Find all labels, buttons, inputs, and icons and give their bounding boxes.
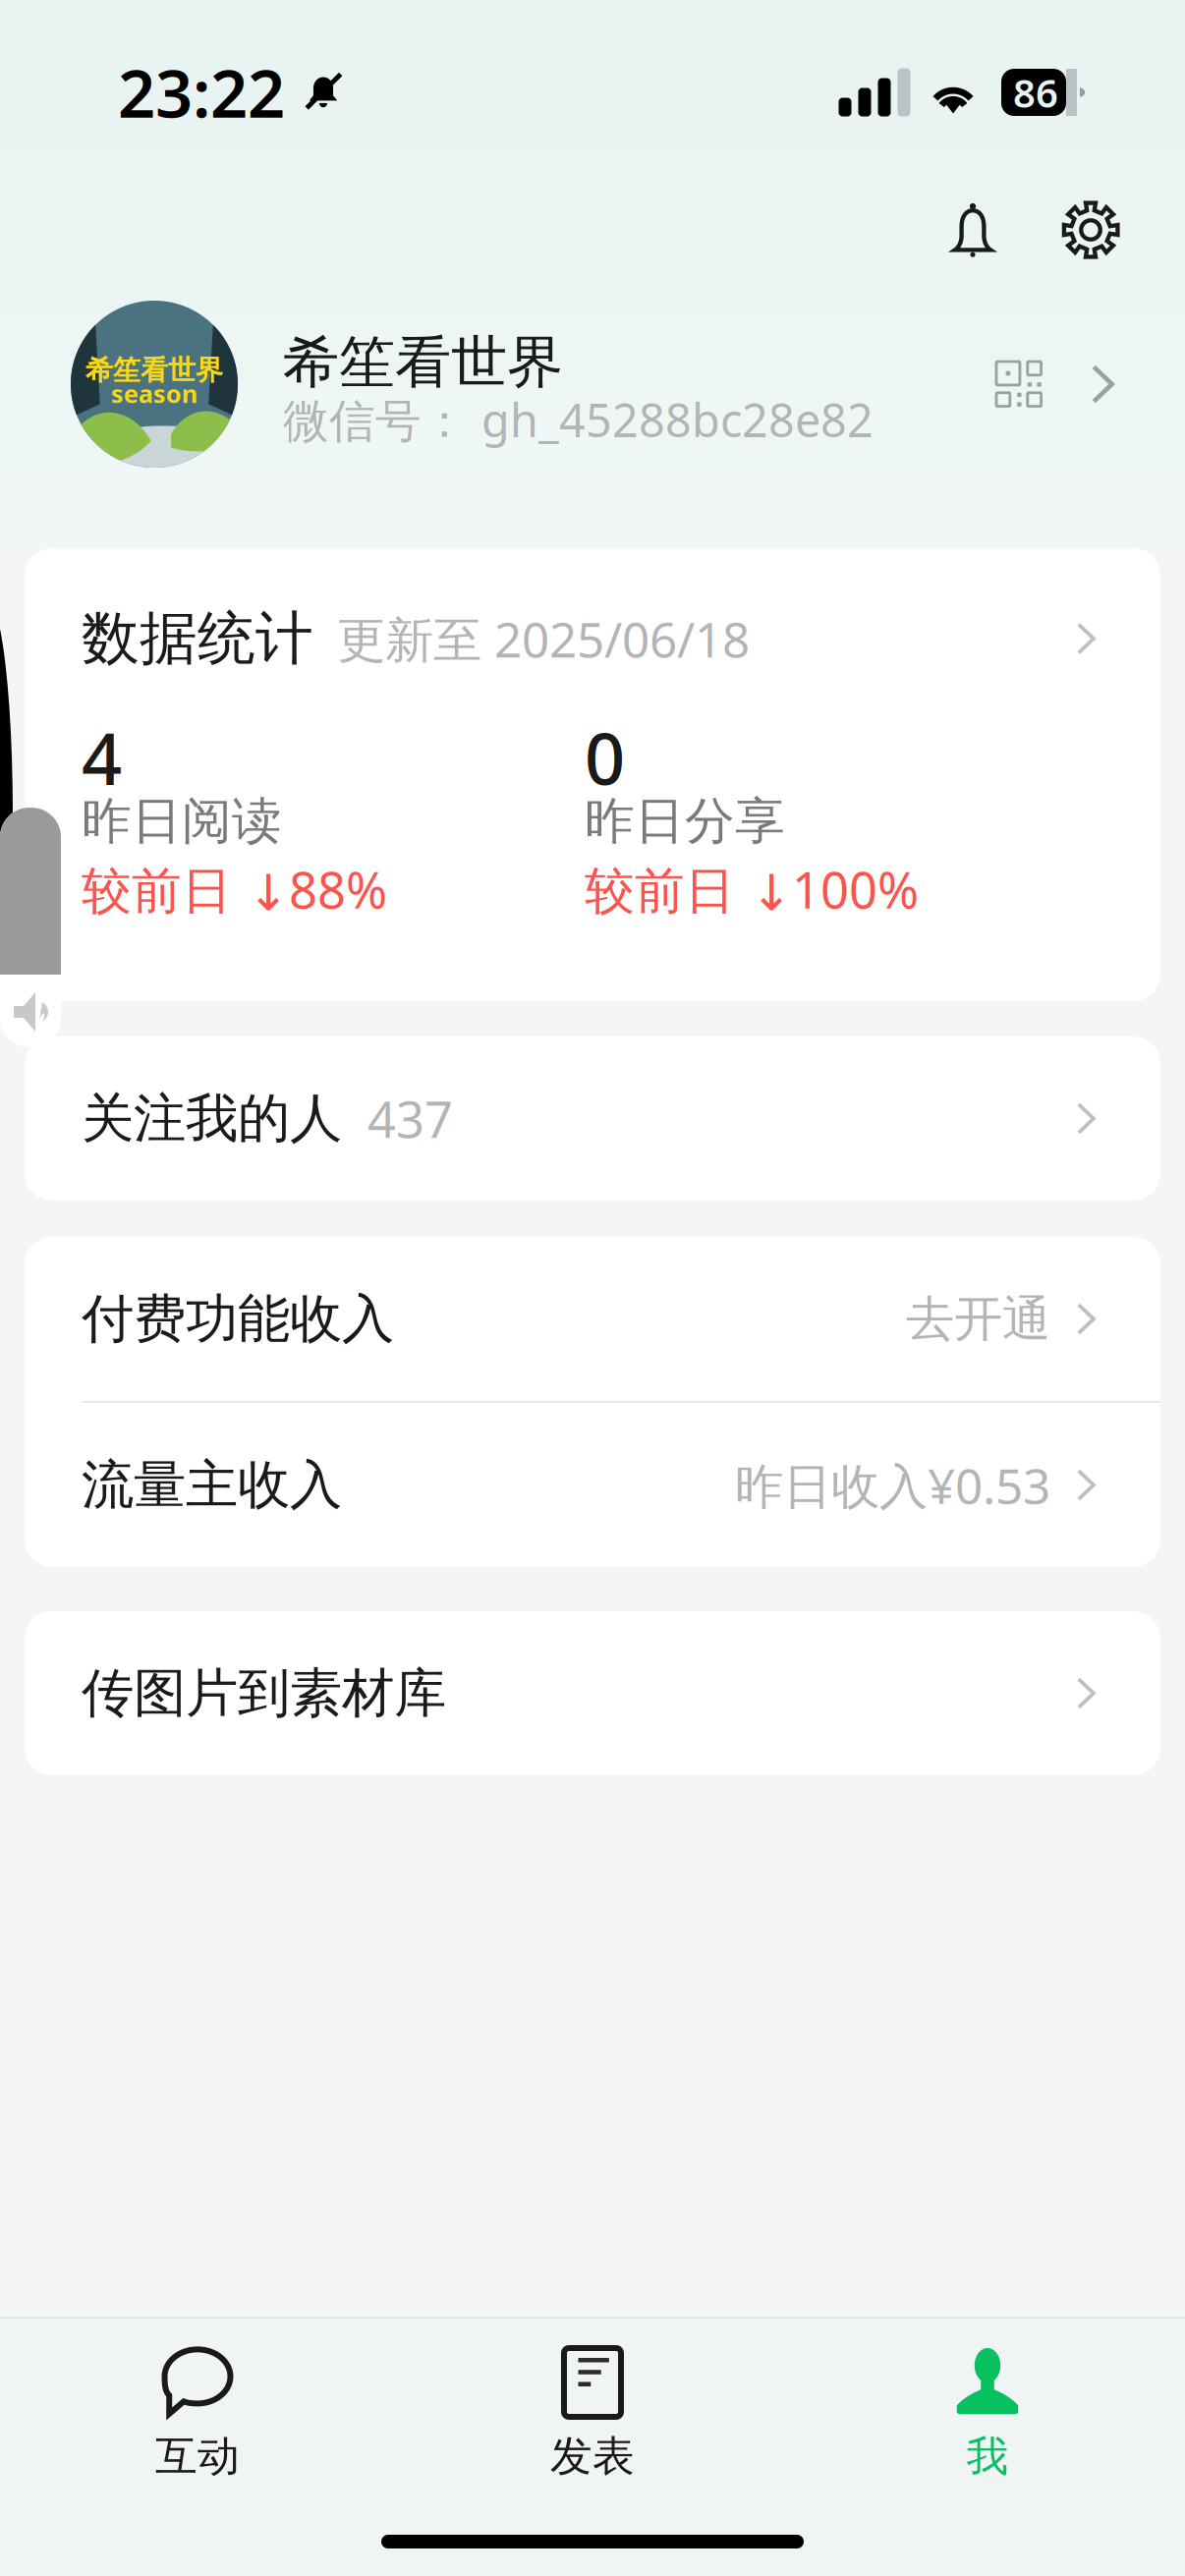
button[interactable]: Settings (1047, 187, 1134, 273)
button[interactable]: 互动 (0, 2348, 395, 2482)
button[interactable]: 传图片到素材库 (25, 1611, 1160, 1775)
staticText: 86 (1013, 66, 1058, 118)
staticText: 较前日 ↓88% (82, 856, 387, 922)
staticText: 希笙看世界 (85, 353, 223, 387)
button[interactable]: 发表 (395, 2348, 790, 2482)
staticText: 我 (966, 2431, 1009, 2482)
staticText: 23:22 (118, 49, 285, 136)
staticText: 数据统计 (82, 603, 313, 674)
staticText: 较前日 ↓100% (585, 856, 919, 922)
staticText: 437 (342, 1086, 453, 1152)
button[interactable]: 关注我的人 (25, 1036, 1160, 1201)
staticText: 付费功能收入 (82, 1287, 394, 1351)
button[interactable]: Notifications (922, 187, 1024, 273)
staticText: 微信号： gh_45288bc28e82 (283, 389, 874, 450)
staticText: 传图片到素材库 (82, 1661, 446, 1725)
staticText: 发表 (550, 2431, 635, 2482)
staticText: 更新至 2025/06/18 (337, 606, 750, 671)
staticText: 昨日收入¥0.53 (735, 1453, 1050, 1517)
staticText: 去开通 (906, 1289, 1050, 1349)
staticText: 关注我的人 (82, 1086, 342, 1151)
staticText: 希笙看世界 (283, 328, 563, 397)
staticText: 0 (585, 711, 625, 804)
button[interactable]: 流量主收入 (25, 1403, 1160, 1567)
button[interactable]: 付费功能收入 (25, 1237, 1160, 1401)
staticText: season (111, 377, 197, 410)
staticText: 互动 (155, 2431, 240, 2482)
button[interactable]: 我 (790, 2348, 1185, 2482)
staticText: 昨日分享 (585, 791, 785, 852)
button[interactable]: 希笙看世界 (0, 273, 1185, 477)
staticText: 昨日阅读 (82, 791, 282, 852)
staticText: 流量主收入 (82, 1453, 342, 1517)
staticText: 4 (82, 711, 122, 804)
button[interactable]: 数据统计 (25, 548, 1160, 729)
